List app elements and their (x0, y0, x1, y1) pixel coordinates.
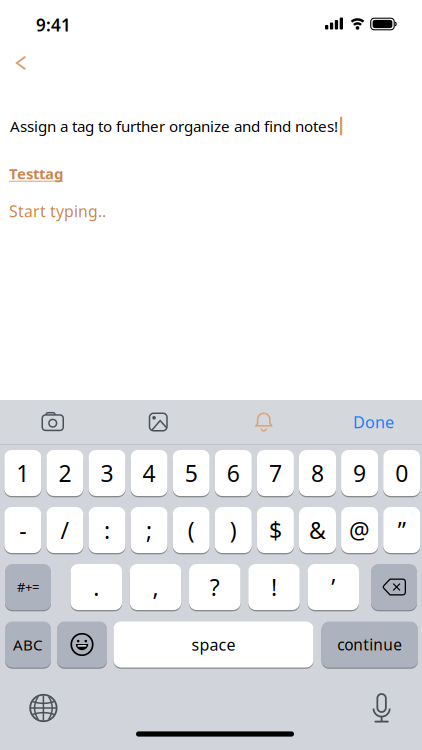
button[interactable]: 2 (46, 450, 83, 496)
staticText: 9:41 (36, 14, 71, 36)
staticText: ) (230, 515, 237, 545)
staticText: : (104, 515, 110, 545)
staticText: space (191, 634, 235, 655)
button[interactable] (7, 49, 35, 77)
button[interactable]: 6 (215, 450, 252, 496)
staticText: 9 (353, 458, 366, 488)
staticText: 0 (395, 458, 408, 488)
staticText: 2 (58, 458, 71, 488)
button[interactable]: 3 (88, 450, 125, 496)
button[interactable]: ’ (308, 564, 359, 610)
staticText: 3 (100, 458, 113, 488)
button[interactable]: , (130, 564, 181, 610)
staticText: 8 (311, 458, 324, 488)
staticText: - (19, 515, 26, 545)
button[interactable]: 5 (173, 450, 210, 496)
button[interactable]: 0 (383, 450, 420, 496)
button[interactable]: ( (173, 507, 210, 553)
button[interactable]: : (88, 507, 125, 553)
button[interactable]: . (70, 564, 122, 610)
staticText: ’ (331, 572, 335, 602)
button[interactable]: 1 (4, 450, 41, 496)
button[interactable]: & (299, 507, 336, 553)
staticText: 7 (269, 458, 282, 488)
staticText: ( (188, 515, 195, 545)
button[interactable]: Done (338, 404, 408, 440)
staticText: #+= (17, 578, 39, 596)
button[interactable]: ; (131, 507, 168, 553)
button[interactable] (23, 404, 83, 440)
staticText: 4 (143, 458, 156, 488)
button[interactable]: 8 (299, 450, 336, 496)
staticText: Testtag (9, 164, 63, 183)
button[interactable]: 7 (257, 450, 294, 496)
button[interactable] (128, 404, 188, 440)
staticText: ABC (13, 634, 43, 654)
staticText: Start typing.. (9, 200, 106, 221)
staticText: Done (353, 411, 394, 433)
staticText: / (60, 515, 69, 545)
staticText: 6 (227, 458, 240, 488)
button[interactable] (359, 685, 405, 731)
staticText: @ (349, 515, 370, 545)
button[interactable]: #+= (5, 564, 51, 610)
button[interactable] (57, 621, 107, 667)
staticText: ; (146, 515, 152, 545)
staticText: , (152, 572, 158, 602)
button[interactable]: ) (215, 507, 252, 553)
button[interactable]: ? (189, 564, 241, 610)
staticText: $ (269, 515, 282, 545)
staticText: Assign a tag to further organize and fin… (10, 116, 338, 136)
staticText: continue (337, 634, 402, 655)
button[interactable]: - (4, 507, 41, 553)
button[interactable]: continue (321, 621, 418, 667)
staticText: & (309, 515, 326, 545)
staticText: ! (271, 572, 277, 602)
button[interactable]: Testtag (9, 164, 63, 183)
button[interactable]: / (46, 507, 83, 553)
staticText: 5 (185, 458, 198, 488)
button[interactable] (20, 685, 66, 731)
staticText: . (93, 572, 99, 602)
staticText: 1 (16, 458, 29, 488)
button[interactable] (371, 564, 417, 610)
button[interactable]: space (113, 621, 313, 667)
button[interactable]: $ (257, 507, 294, 553)
button[interactable]: @ (341, 507, 378, 553)
button[interactable]: ABC (5, 621, 51, 667)
button[interactable]: ! (248, 564, 300, 610)
button[interactable]: ” (383, 507, 420, 553)
button[interactable]: 9 (341, 450, 378, 496)
button[interactable]: 4 (131, 450, 168, 496)
staticText: ? (210, 572, 220, 602)
staticText: ” (398, 515, 406, 545)
button[interactable] (234, 403, 294, 439)
